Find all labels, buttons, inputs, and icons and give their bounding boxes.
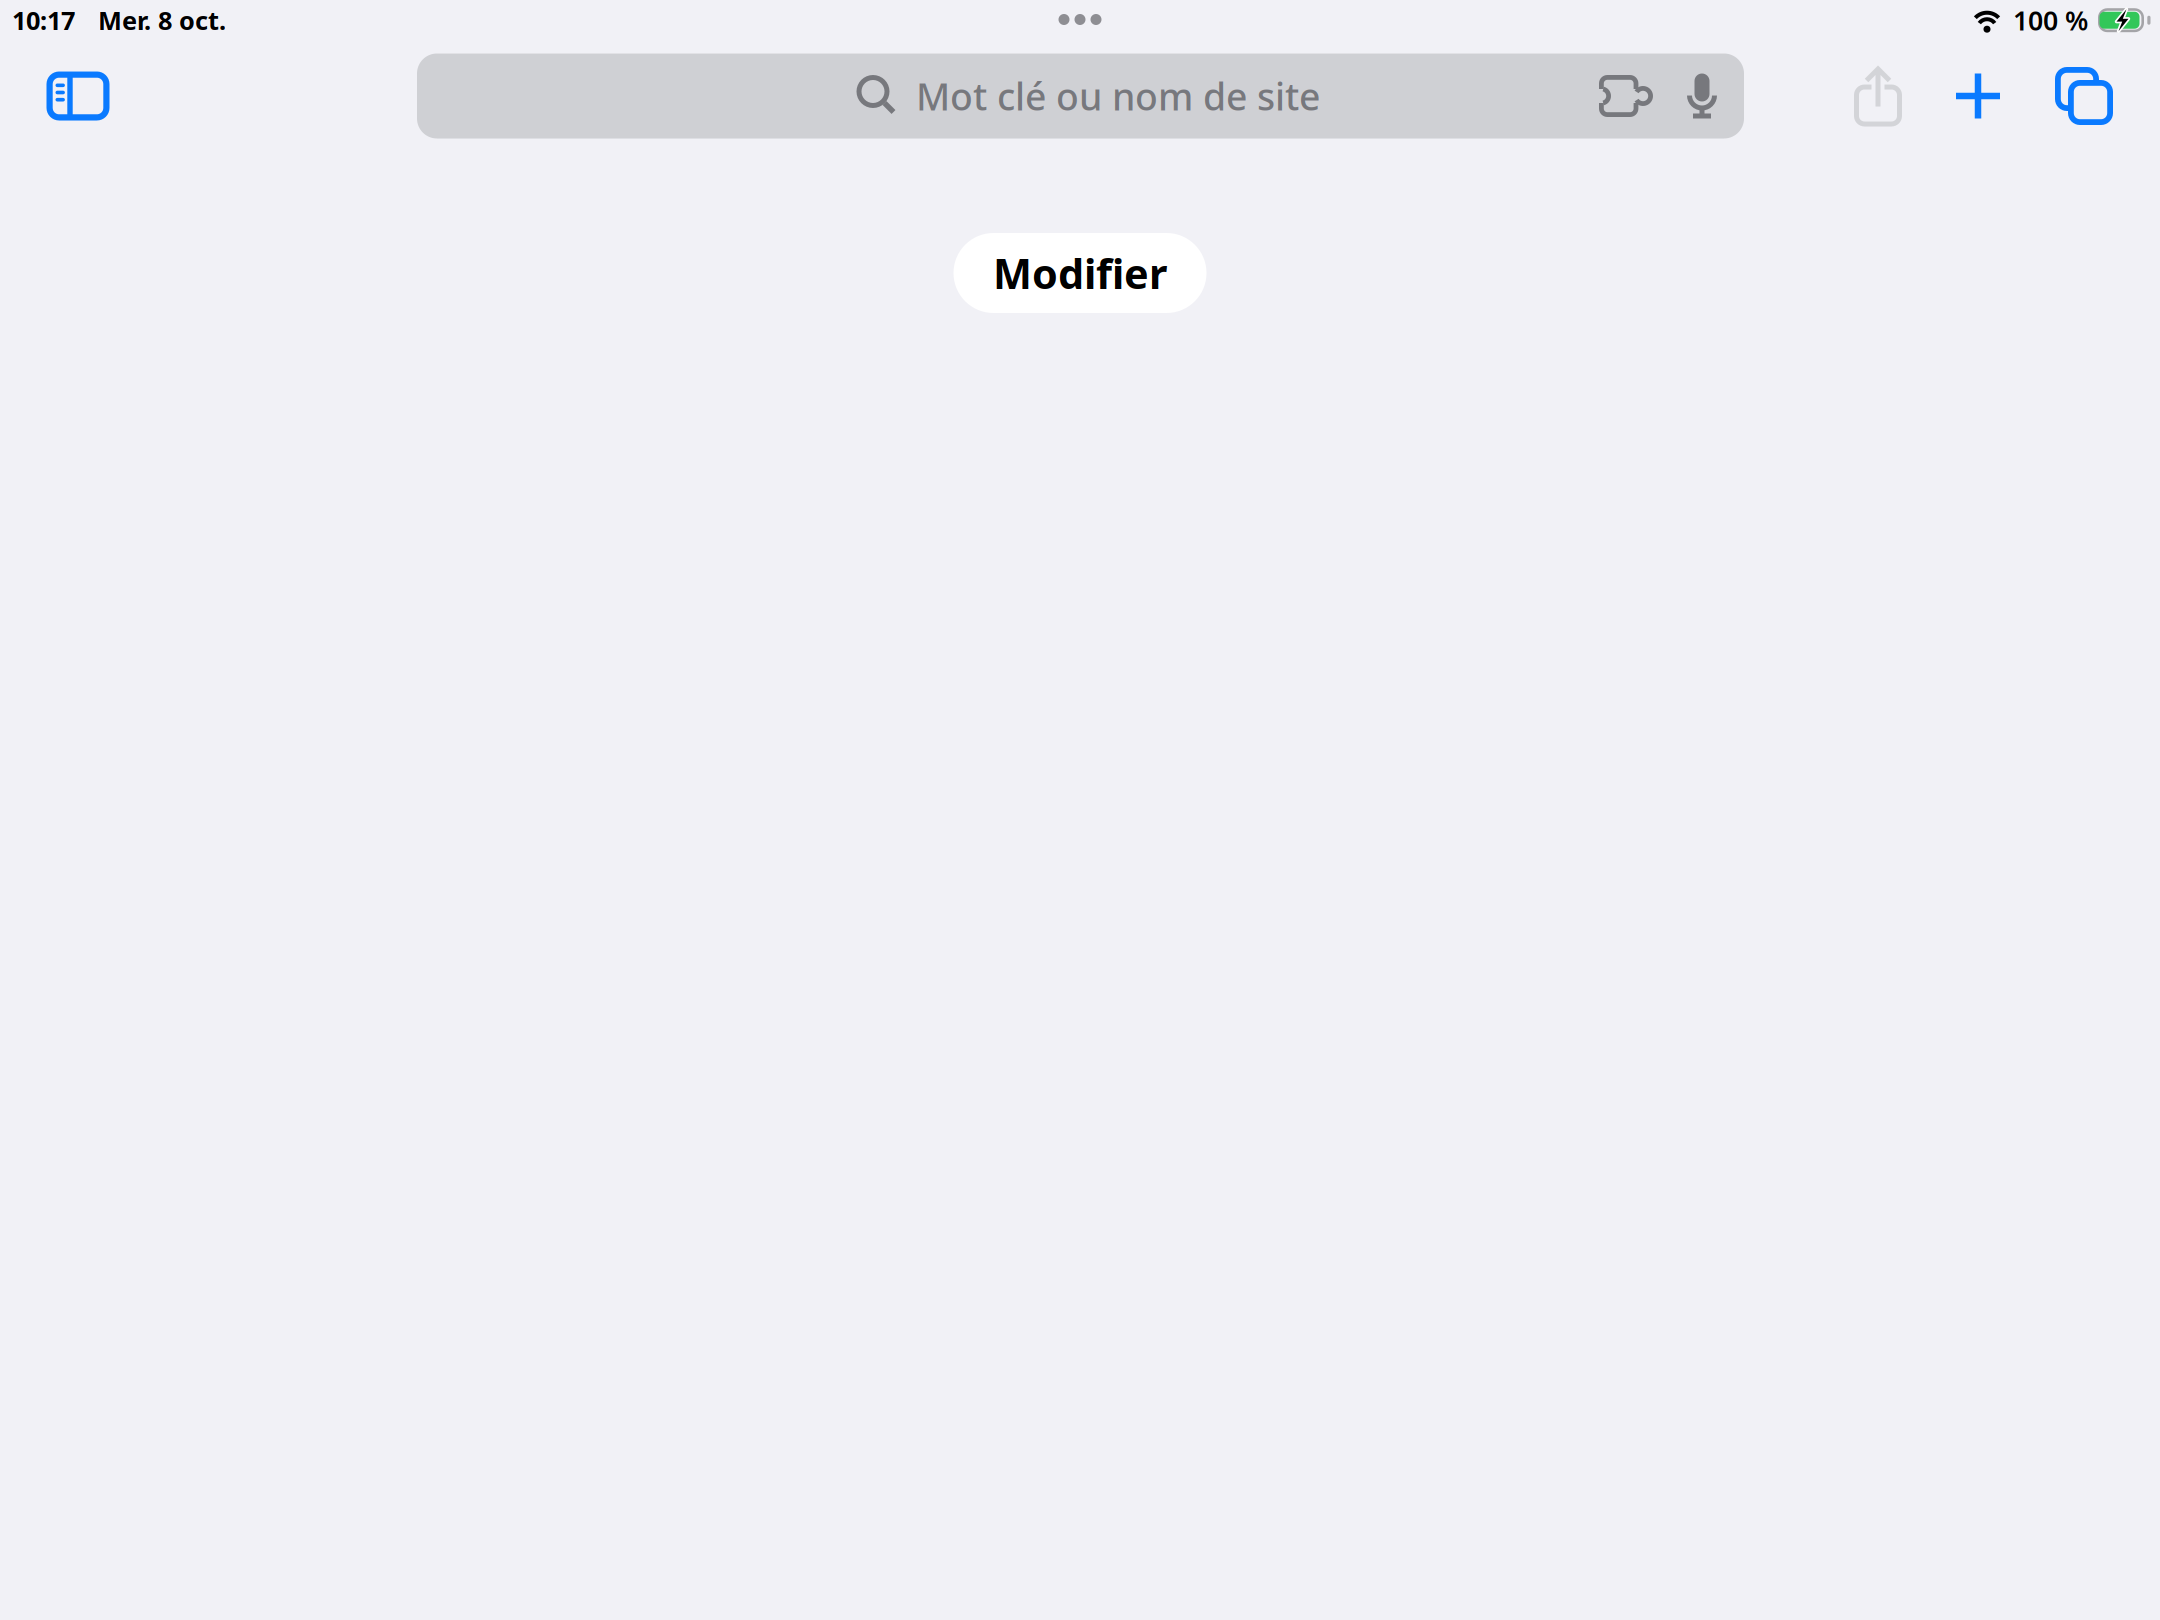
staticText: 10:17 [12, 3, 75, 37]
staticText: Modifier [993, 246, 1167, 300]
button[interactable]: Onglets [2020, 46, 2148, 146]
button[interactable]: Afficher la barre latérale [0, 46, 156, 146]
staticText: Mer. 8 oct. [98, 3, 226, 37]
staticText: Mot clé ou nom de site [916, 71, 1320, 121]
button[interactable]: Modifier [953, 233, 1206, 313]
button[interactable]: Nouvel onglet [1936, 46, 2020, 146]
button[interactable]: Partager [1820, 46, 1936, 146]
staticText: 100 % [2013, 2, 2088, 38]
button[interactable]: Mot clé ou nom de site [417, 53, 1744, 138]
